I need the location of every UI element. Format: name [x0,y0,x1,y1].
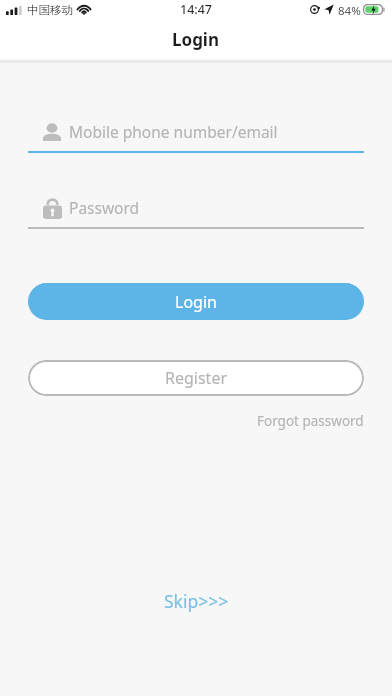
staticText: Login [172,28,220,51]
button[interactable]: Skip>>> [164,589,229,613]
staticText: 14:47 [180,1,213,18]
staticText: 中国移动 [27,3,73,17]
staticText: Register [165,367,228,389]
staticText: Forgot password [257,412,364,430]
button[interactable]: Login [28,283,364,320]
staticText: 84% [338,3,361,19]
staticText: Skip>>> [164,589,229,613]
button[interactable]: Forgot password [257,412,364,430]
button[interactable]: Register [28,360,364,396]
button[interactable]: Password input [28,194,364,229]
staticText: Login [175,291,217,313]
staticText: Mobile phone number/email [69,121,278,142]
button[interactable]: Mobile phone number or email input [28,118,364,153]
staticText: Password [69,197,140,218]
other: Cellular signal [6,6,22,15]
